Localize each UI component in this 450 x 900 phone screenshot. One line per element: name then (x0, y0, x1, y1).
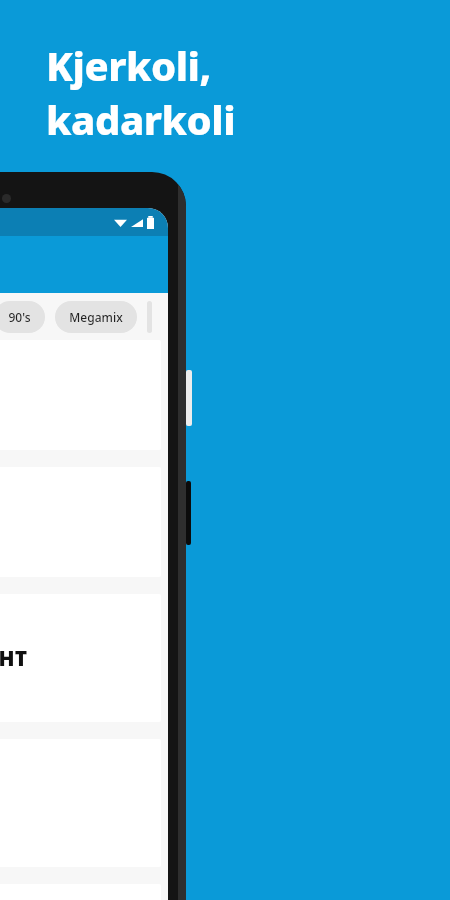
staticText: Kjerkoli, (46, 38, 211, 92)
button[interactable]: MIDNIGHT (0, 594, 161, 722)
button[interactable]: Megamix (55, 301, 137, 333)
other: Power button (186, 370, 192, 426)
staticText: Megamix (69, 309, 123, 325)
button[interactable]: 90's (0, 301, 45, 333)
staticText: kadarkoli (46, 92, 236, 146)
other: Volume button (186, 481, 191, 545)
staticText: 90's (8, 309, 31, 325)
staticText: MIDNIGHT (0, 644, 28, 673)
